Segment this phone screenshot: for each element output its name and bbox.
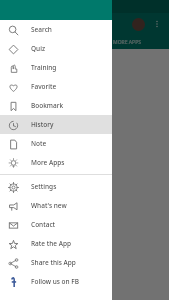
staticText: Settings — [31, 182, 57, 191]
staticText: Share this App — [31, 258, 76, 267]
button[interactable]: MAIL — [0, 35, 84, 49]
staticText: Bookmark — [31, 101, 64, 110]
button[interactable]: Rate the App — [0, 234, 112, 253]
staticText: Follow us on FB — [31, 277, 80, 286]
staticText: Note — [31, 139, 47, 148]
button[interactable]: Open navigation drawer — [4, 15, 22, 33]
button[interactable]: Share this App — [0, 253, 112, 272]
staticText: Rate the App — [31, 239, 72, 248]
staticText: MORE APPS — [113, 39, 141, 46]
button[interactable]: Settings — [0, 177, 112, 196]
staticText: Search — [31, 25, 52, 34]
button[interactable]: Search — [0, 20, 112, 39]
staticText: Empty — [74, 170, 95, 180]
button[interactable]: Bookmark — [0, 96, 112, 115]
staticText: Quiz — [31, 44, 46, 53]
staticText: Favorite — [31, 82, 57, 91]
button[interactable]: Favorite — [0, 77, 112, 96]
button[interactable]: Contact — [0, 215, 112, 234]
button[interactable]: More Apps — [0, 153, 112, 172]
button[interactable]: Note — [0, 134, 112, 153]
button[interactable]: Training — [0, 58, 112, 77]
button[interactable]: History — [0, 115, 112, 134]
button[interactable]: MORE APPS — [84, 35, 169, 49]
button[interactable]: Profile — [132, 18, 145, 31]
staticText: More Apps — [31, 158, 65, 167]
staticText: Contact — [31, 220, 56, 229]
button[interactable]: Follow us on FB — [0, 272, 112, 291]
button[interactable]: More options — [149, 16, 165, 32]
staticText: History — [31, 120, 54, 129]
staticText: What's new — [31, 201, 67, 210]
button[interactable]: Quiz — [0, 39, 112, 58]
staticText: Training — [31, 63, 57, 72]
button[interactable]: What's new — [0, 196, 112, 215]
